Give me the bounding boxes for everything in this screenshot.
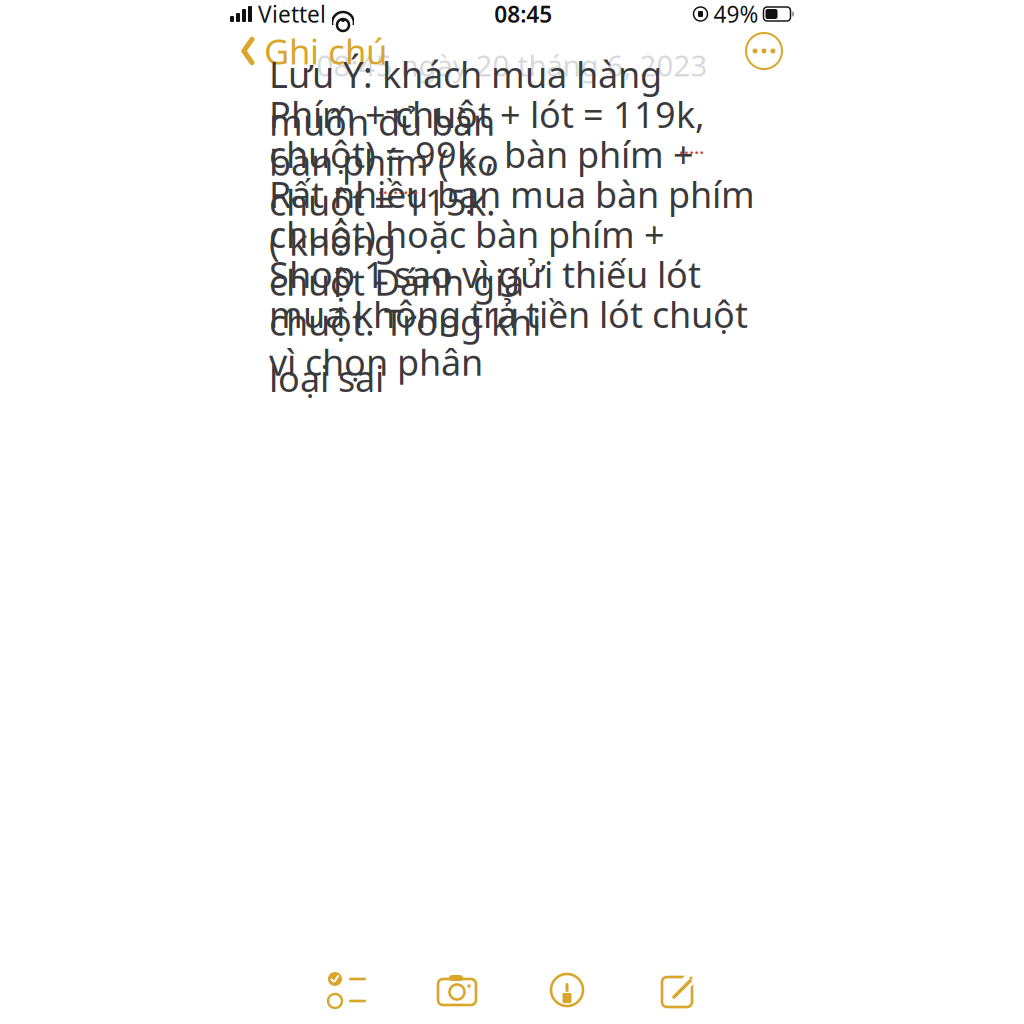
staticText: mua không trả tiền lót chuột vì chọn phâ… — [269, 290, 748, 386]
button[interactable]: More options — [744, 31, 784, 71]
staticText: 08:45 ngày 20 tháng 6, 2023 — [316, 45, 707, 84]
staticText: chuột) hoặc bàn phím + chuột Đánh giá — [269, 210, 665, 306]
staticText: Shop 1 sao vì gửi thiếu lót chuột. Trong… — [269, 250, 701, 346]
staticText: Viettel — [258, 0, 326, 29]
staticText: Ghi chú — [264, 28, 387, 74]
staticText: 08:45 — [494, 0, 552, 29]
button[interactable]: Markup — [512, 962, 622, 1018]
button[interactable]: Ghi chú — [240, 24, 387, 78]
button[interactable]: Checklist — [292, 962, 402, 1018]
staticText: chuột) = 99k , bàn phím + chuột = 115k. — [269, 130, 694, 226]
staticText: loại sai — [269, 354, 384, 402]
staticText: 49% — [713, 0, 758, 29]
button[interactable]: New note — [622, 962, 732, 1018]
staticText: Rất nhiều bạn mua bàn phím ( không — [269, 170, 755, 266]
staticText: Phím + chuột + lót = 119k, bàn phím ( ko — [269, 90, 705, 186]
staticText: Lưu Ý: khách mua hàng muốn đủ bàn — [269, 50, 662, 146]
button[interactable]: Camera — [402, 962, 512, 1018]
